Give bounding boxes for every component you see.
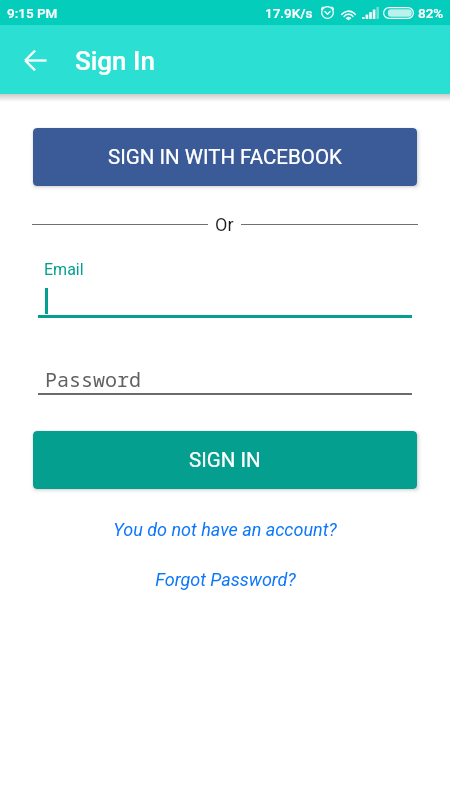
staticText: You do not have an account? bbox=[113, 519, 337, 540]
staticText: SIGN IN WITH FACEBOOK bbox=[108, 145, 342, 169]
button[interactable]: Password bbox=[38, 362, 412, 395]
staticText: Or bbox=[215, 214, 234, 235]
staticText: Email bbox=[44, 260, 84, 279]
button[interactable]: Email bbox=[38, 256, 412, 318]
button[interactable]: You do not have an account? bbox=[103, 516, 347, 543]
staticText: 82% bbox=[418, 5, 444, 21]
staticText: Sign In bbox=[75, 46, 155, 76]
button[interactable]: SIGN IN WITH FACEBOOK bbox=[33, 128, 417, 186]
staticText: Forgot Password? bbox=[155, 569, 296, 590]
staticText: SIGN IN bbox=[189, 448, 261, 472]
button[interactable]: SIGN IN bbox=[33, 431, 417, 489]
staticText: 17.9K/s bbox=[265, 5, 313, 21]
staticText: 9:15 PM bbox=[7, 5, 58, 21]
staticText: Password bbox=[45, 366, 141, 393]
button[interactable]: Back bbox=[11, 36, 59, 84]
button[interactable]: Forgot Password? bbox=[145, 566, 306, 593]
